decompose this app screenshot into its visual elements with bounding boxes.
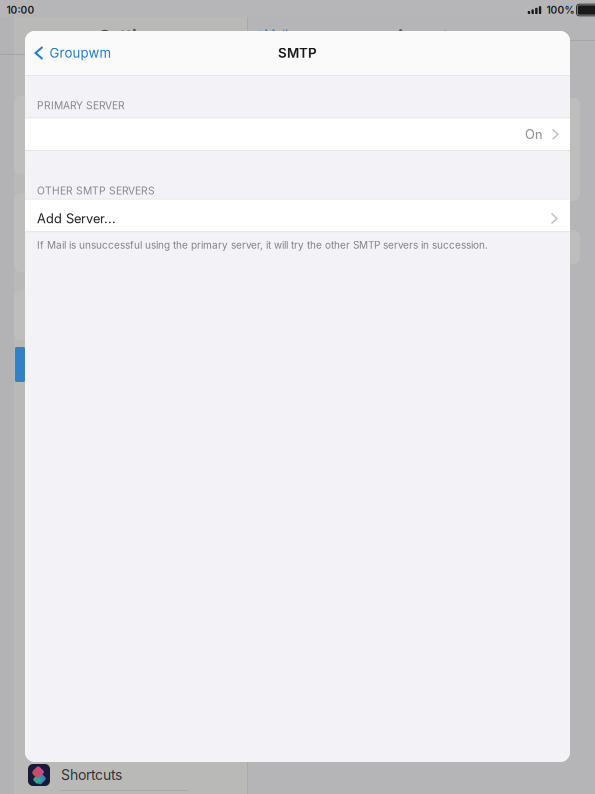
staticText: Add Server... [37, 211, 116, 226]
staticText: 100% [546, 4, 574, 16]
staticText: Shortcuts [61, 766, 122, 783]
staticText: Settings [99, 26, 169, 47]
staticText: 10:00 [6, 4, 34, 16]
button[interactable]: Groupwm [25, 36, 121, 70]
button[interactable]: Add Server... [25, 199, 570, 231]
staticText: On [525, 127, 543, 142]
staticText: Accounts [396, 27, 454, 42]
staticText: Groupwm [49, 45, 111, 61]
staticText: OTHER SMTP SERVERS [37, 184, 155, 197]
button[interactable]: On [25, 118, 570, 150]
staticText: If Mail is unsuccessful using the primar… [37, 239, 488, 251]
staticText: SMTP [278, 45, 317, 61]
staticText: PRIMARY SERVER [37, 99, 125, 112]
staticText: Mail [264, 27, 288, 42]
